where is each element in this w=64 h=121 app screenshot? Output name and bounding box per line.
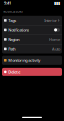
- button[interactable]: Delete: [2, 68, 62, 76]
- staticText: NOTIFICATIONS: [3, 10, 22, 13]
- staticText: 9:41: [4, 0, 11, 6]
- button[interactable]: Monitoring activity: [2, 56, 62, 65]
- button[interactable]: Region: [2, 35, 62, 44]
- staticText: Auto: [52, 46, 60, 51]
- staticText: Home: [49, 37, 60, 42]
- button[interactable]: Path: [2, 44, 62, 53]
- staticText: ▮▮▮: [54, 1, 60, 5]
- button[interactable]: Notifications: [2, 25, 62, 34]
- staticText: Tags: [8, 18, 16, 23]
- button[interactable]: Tags: [2, 16, 62, 25]
- staticText: Interior: [44, 18, 57, 23]
- staticText: Path: [8, 46, 15, 51]
- staticText: Monitoring activity: [8, 58, 40, 63]
- staticText: Notifications: [8, 27, 29, 32]
- staticText: Region: [8, 37, 19, 42]
- staticText: Delete: [8, 69, 20, 74]
